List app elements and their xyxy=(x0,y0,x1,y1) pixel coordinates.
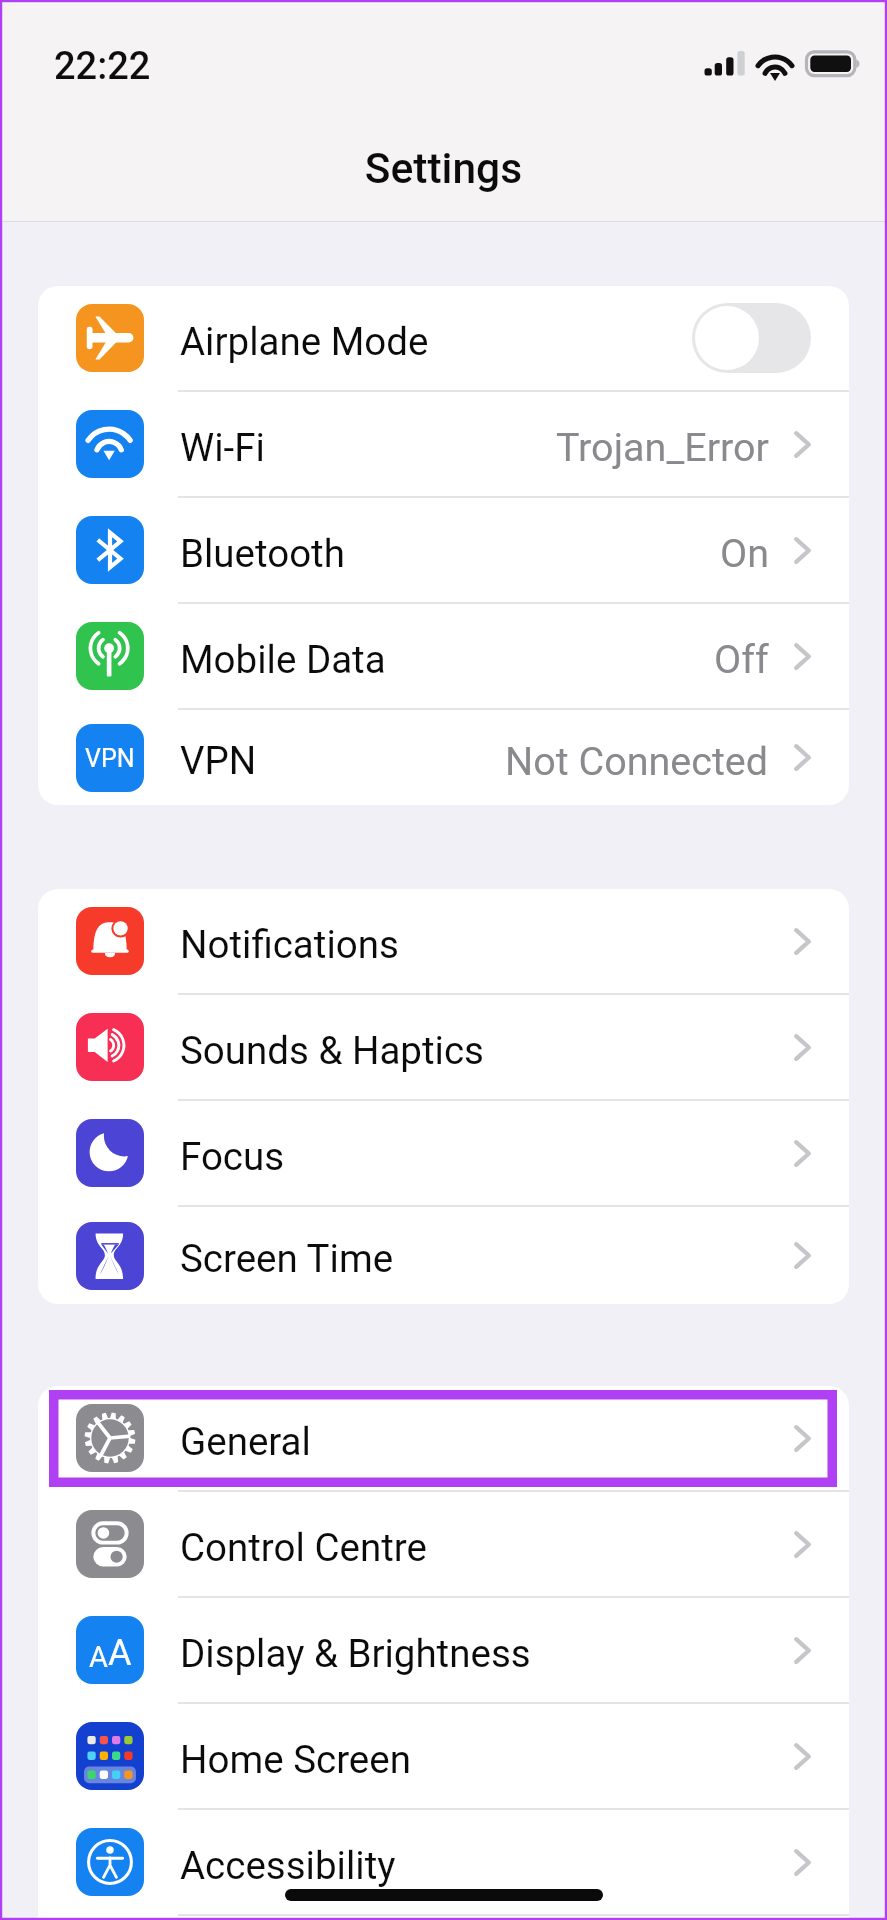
staticText: A xyxy=(89,1640,108,1674)
button[interactable]: Airplane Mode xyxy=(38,286,849,390)
staticText: Screen Time xyxy=(180,1236,394,1281)
staticText: 22:22 xyxy=(54,44,151,89)
staticText: Sounds & Haptics xyxy=(180,1028,484,1073)
staticText: Trojan_Error xyxy=(556,424,769,470)
button[interactable]: Home Screen xyxy=(38,1704,849,1808)
staticText: Wi-Fi xyxy=(180,425,265,470)
staticText: Mobile Data xyxy=(180,637,386,682)
staticText: A xyxy=(108,1632,132,1674)
staticText: Control Centre xyxy=(180,1525,427,1570)
staticText: Settings xyxy=(0,144,887,194)
staticText: Not Connected xyxy=(505,738,769,784)
staticText: Focus xyxy=(180,1134,285,1179)
button[interactable]: Bluetooth xyxy=(38,498,849,602)
button[interactable]: Wi-Fi xyxy=(38,392,849,496)
button[interactable]: Mobile Data xyxy=(38,604,849,708)
button[interactable]: Screen Time xyxy=(38,1207,849,1304)
staticText: Home Screen xyxy=(180,1737,411,1782)
button[interactable]: Focus xyxy=(38,1101,849,1205)
button[interactable]: A xyxy=(38,1598,849,1702)
button[interactable]: General xyxy=(38,1386,849,1490)
button[interactable]: Wallpaper xyxy=(38,1916,849,1920)
button[interactable]: Sounds & Haptics xyxy=(38,995,849,1099)
staticText: General xyxy=(180,1419,311,1464)
staticText: On xyxy=(720,530,769,576)
button[interactable]: Notifications xyxy=(38,889,849,993)
staticText: Airplane Mode xyxy=(180,319,429,364)
staticText: Off xyxy=(714,636,769,682)
staticText: Bluetooth xyxy=(180,531,345,576)
button[interactable]: VPN xyxy=(38,710,849,805)
staticText: Display & Brightness xyxy=(180,1631,531,1676)
staticText: VPN xyxy=(85,744,135,773)
button[interactable]: Airplane Mode toggle xyxy=(692,303,811,373)
staticText: VPN xyxy=(180,738,257,783)
button[interactable]: Accessibility xyxy=(38,1810,849,1914)
staticText: Notifications xyxy=(180,922,399,967)
other: Status icons xyxy=(700,45,870,90)
button[interactable]: Control Centre xyxy=(38,1492,849,1596)
staticText: Accessibility xyxy=(180,1843,396,1888)
